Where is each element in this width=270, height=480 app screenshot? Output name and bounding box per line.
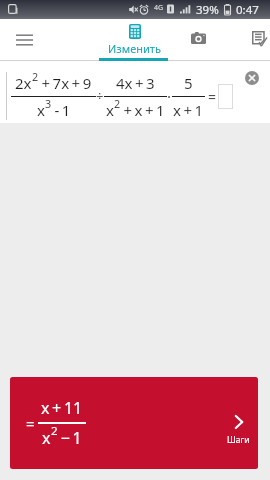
staticText: 2 xyxy=(114,96,121,111)
staticText: 3 xyxy=(45,96,52,111)
button[interactable]: Изменить xyxy=(99,19,169,61)
staticText: 4G xyxy=(154,3,164,13)
staticText: x + 1 xyxy=(173,100,204,120)
staticText: Изменить xyxy=(108,41,161,56)
staticText: 2x xyxy=(15,73,32,93)
button[interactable]: Menu xyxy=(6,19,42,61)
staticText: 5 xyxy=(184,73,193,93)
staticText: = xyxy=(26,413,35,433)
staticText: x + 11 xyxy=(41,397,83,419)
staticText: · xyxy=(167,86,172,106)
staticText: + x + 1 xyxy=(121,100,165,120)
staticText: x xyxy=(106,100,114,120)
staticText: x xyxy=(37,100,45,120)
staticText: = xyxy=(208,87,217,106)
staticText: + 7x + 9 xyxy=(39,73,92,93)
staticText: 2 xyxy=(51,423,58,439)
staticText: - 1 xyxy=(52,100,71,120)
staticText: Шаги xyxy=(227,434,250,446)
staticText: 0:47 xyxy=(236,2,259,18)
staticText: 4x + 3 xyxy=(116,73,155,93)
button[interactable]: Camera xyxy=(180,19,216,61)
button[interactable]: Solutions xyxy=(241,19,270,61)
staticText: 39% xyxy=(196,2,219,18)
staticText: ÷ xyxy=(96,87,104,105)
staticText: 2 xyxy=(32,69,39,84)
staticText: x xyxy=(42,427,51,449)
staticText: − 1 xyxy=(58,427,82,449)
button[interactable]: Clear xyxy=(245,71,259,85)
button[interactable]: = xyxy=(10,377,258,469)
